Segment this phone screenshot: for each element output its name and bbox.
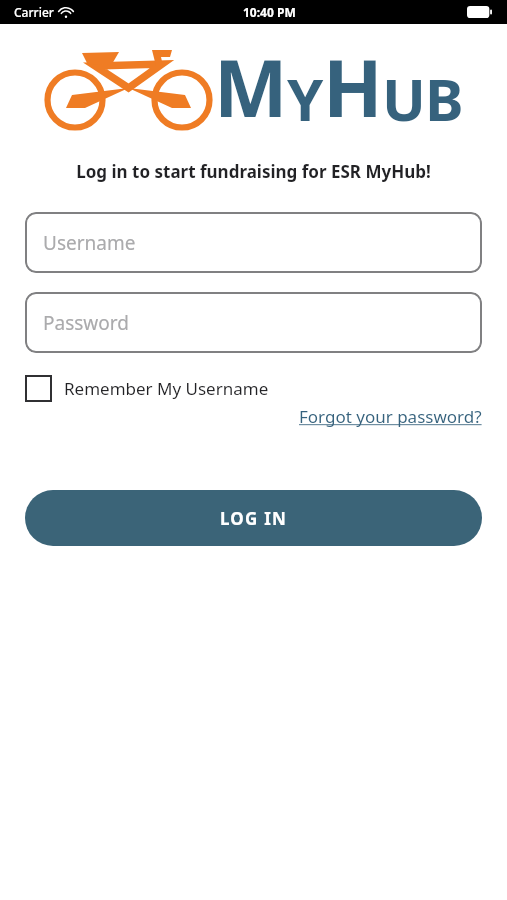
staticText: Y xyxy=(287,59,323,138)
button[interactable]: Remember My Username xyxy=(25,375,269,402)
staticText: LOG IN xyxy=(220,507,287,530)
staticText: Remember My Username xyxy=(64,377,269,400)
staticText: Username xyxy=(43,230,136,256)
button[interactable]: Forgot your password? xyxy=(299,405,482,428)
button[interactable]: Password xyxy=(25,292,482,353)
button[interactable]: LOG IN xyxy=(25,490,482,546)
staticText: Password xyxy=(43,310,129,336)
staticText: Forgot your password? xyxy=(299,405,482,428)
staticText: M xyxy=(214,34,287,140)
staticText: 10:40 PM xyxy=(243,4,296,20)
staticText: Carrier xyxy=(14,4,54,20)
staticText: Log in to start fundraising for ESR MyHu… xyxy=(0,160,507,183)
button[interactable]: Username xyxy=(25,212,482,273)
staticText: B xyxy=(425,59,463,138)
staticText: H xyxy=(323,34,382,140)
staticText: U xyxy=(382,59,425,138)
